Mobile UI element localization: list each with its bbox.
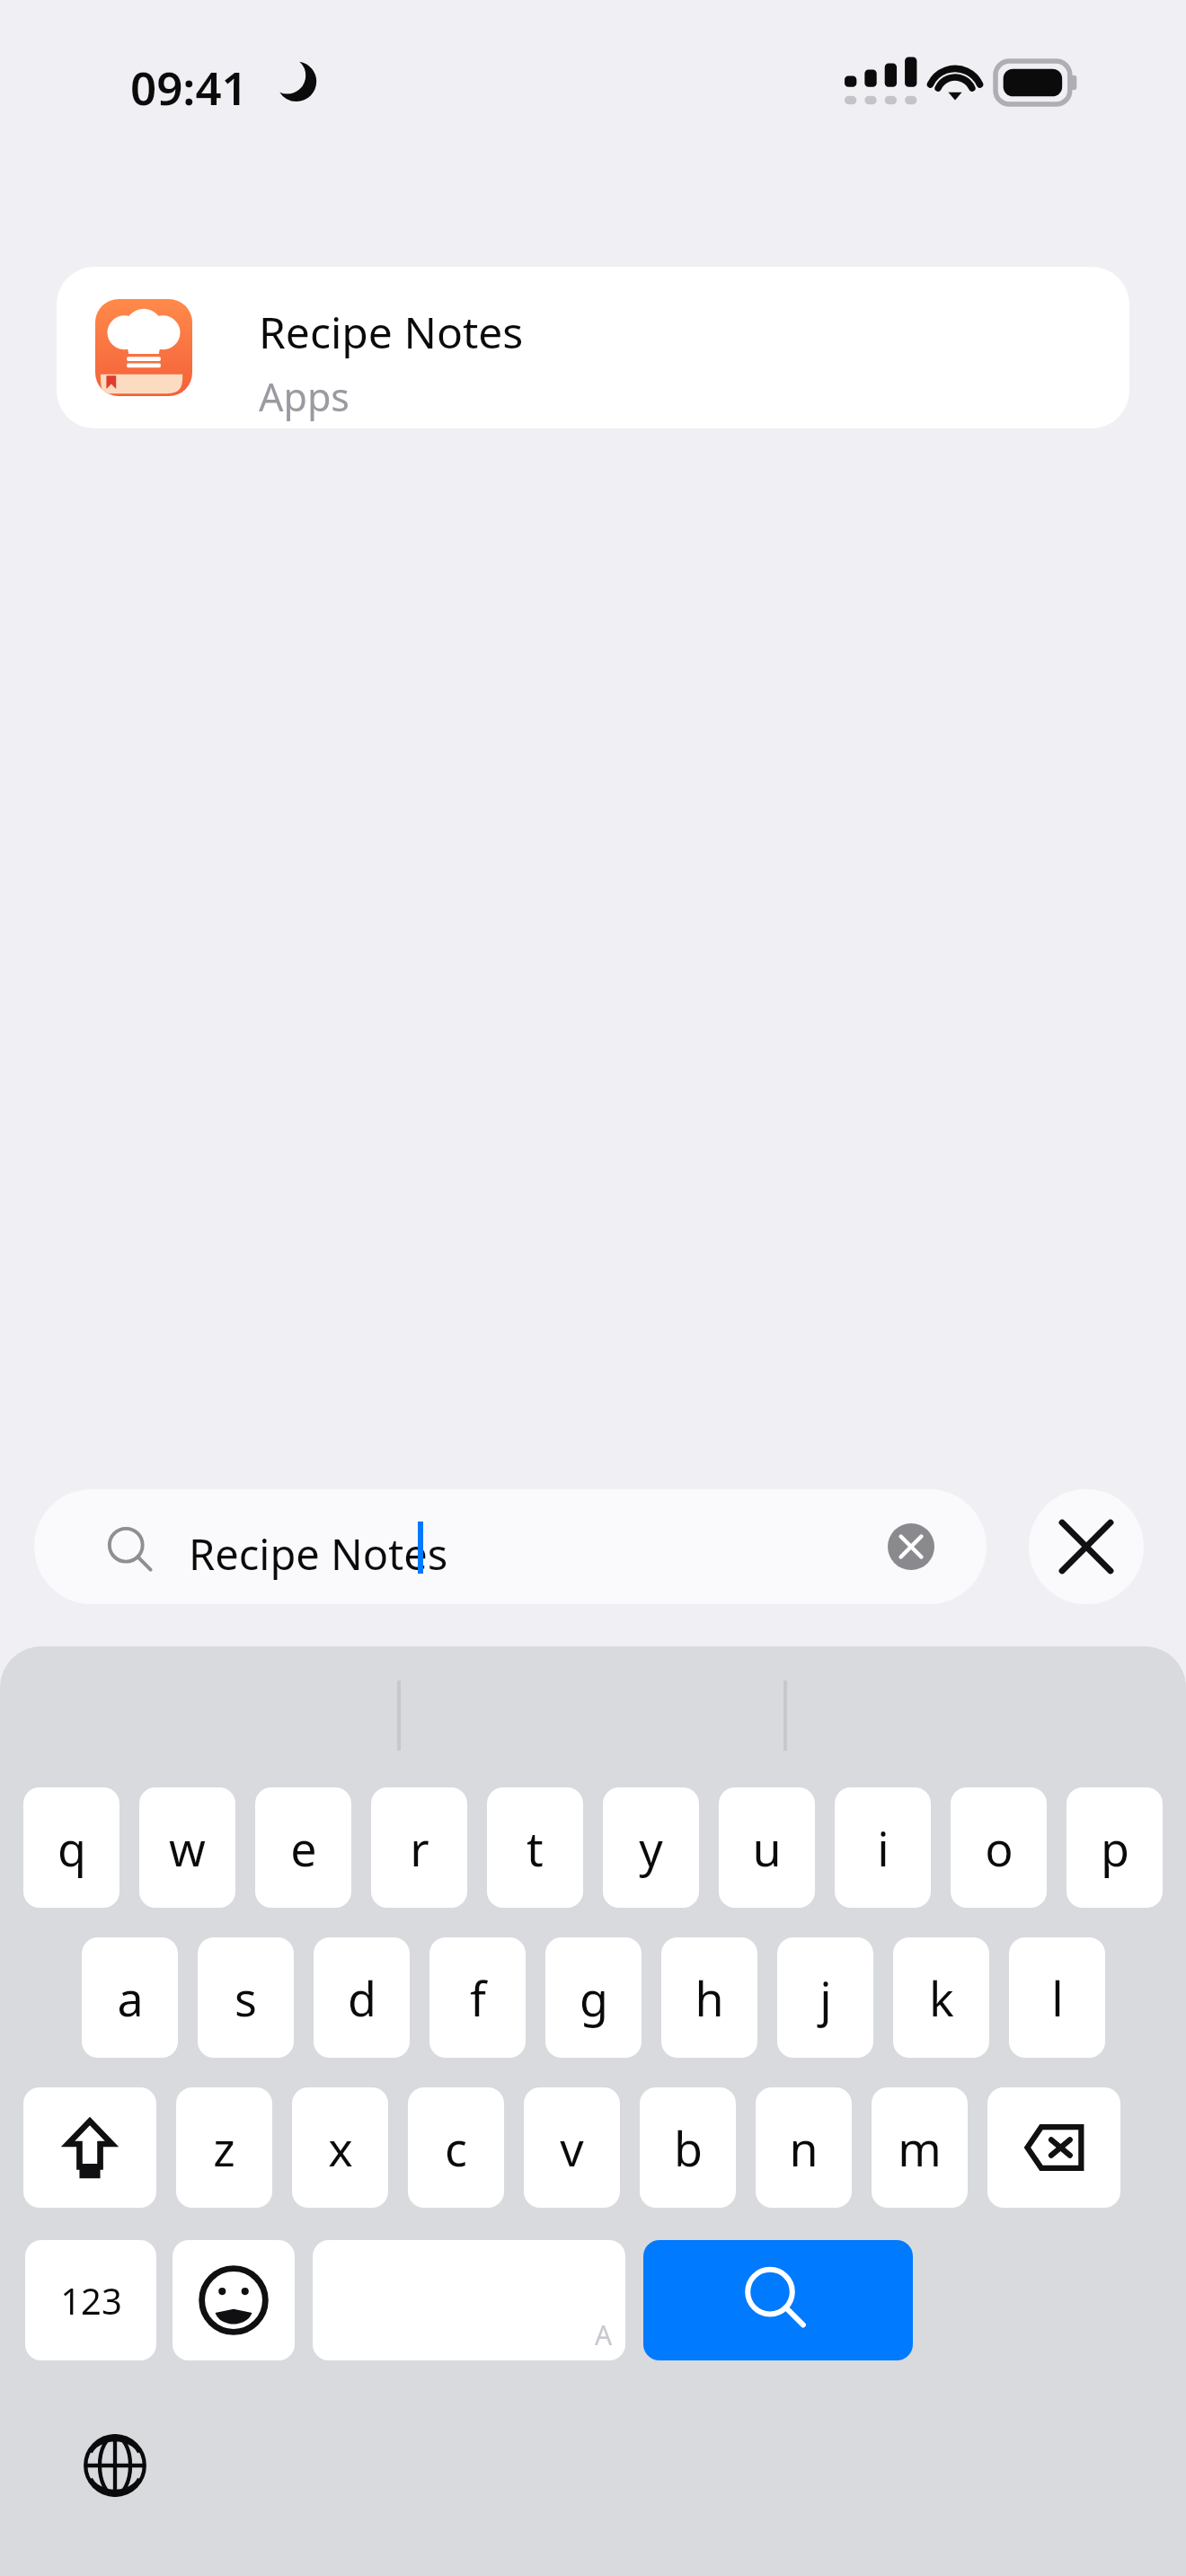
button[interactable]: v [524,2087,620,2208]
button[interactable]: l [1009,1937,1105,2058]
button[interactable]: r [371,1787,467,1908]
staticText: y [639,1816,663,1880]
staticText: A [595,2316,613,2353]
staticText: 09:41 [130,56,248,118]
staticText: r [410,1816,429,1880]
button[interactable]: o [951,1787,1047,1908]
button[interactable]: w [139,1787,235,1908]
button[interactable]: k [893,1937,989,2058]
button[interactable]: Shift [23,2087,156,2208]
staticText: p [1101,1816,1129,1880]
staticText: s [235,1966,257,2030]
staticText: g [580,1966,608,2030]
staticText: j [819,1966,832,2030]
button[interactable]: s [198,1937,294,2058]
staticText: q [58,1816,86,1880]
button[interactable]: n [756,2087,852,2208]
staticText: Recipe Notes [259,303,524,361]
staticText: o [985,1816,1013,1880]
staticText: 123 [60,2276,122,2325]
button[interactable]: z [176,2087,272,2208]
staticText: w [169,1816,206,1880]
button[interactable]: q [23,1787,119,1908]
button[interactable]: Recipe Notes [34,1489,987,1604]
staticText: l [1051,1966,1064,2030]
staticText: z [213,2116,235,2180]
button[interactable]: x [292,2087,388,2208]
button[interactable]: u [719,1787,815,1908]
staticText: n [789,2116,819,2180]
button[interactable]: f [429,1937,526,2058]
button[interactable]: b [640,2087,736,2208]
button[interactable]: y [603,1787,699,1908]
button[interactable]: Recipe Notes [57,267,1129,428]
staticText: m [898,2116,942,2180]
staticText: Apps [259,370,350,423]
button[interactable]: p [1067,1787,1163,1908]
button[interactable] [313,2240,625,2360]
button[interactable]: 123 [25,2240,156,2360]
staticText: c [445,2116,467,2180]
staticText: k [929,1966,954,2030]
staticText: t [527,1816,544,1880]
staticText: x [328,2116,353,2180]
button[interactable]: d [314,1937,410,2058]
button[interactable]: t [487,1787,583,1908]
staticText: e [290,1816,317,1880]
staticText: b [674,2116,703,2180]
button[interactable]: Clear text [888,1523,934,1570]
staticText: v [560,2116,584,2180]
staticText: i [877,1816,889,1880]
button[interactable]: c [408,2087,504,2208]
staticText: u [752,1816,782,1880]
button[interactable]: i [835,1787,931,1908]
button[interactable]: m [872,2087,968,2208]
button[interactable]: Backspace [987,2087,1120,2208]
button[interactable]: h [661,1937,757,2058]
button[interactable]: e [255,1787,351,1908]
button[interactable]: a [82,1937,178,2058]
staticText: a [117,1966,144,2030]
staticText: d [348,1966,376,2030]
button[interactable]: Emoji [173,2240,295,2360]
button[interactable]: Search [643,2240,913,2360]
staticText: h [695,1966,724,2030]
button[interactable]: Change keyboard language [70,2421,160,2510]
button[interactable]: g [545,1937,642,2058]
button[interactable]: j [777,1937,873,2058]
staticText: Recipe Notes [189,1525,448,1583]
button[interactable]: Close search [1029,1489,1144,1604]
staticText: f [470,1966,486,2030]
